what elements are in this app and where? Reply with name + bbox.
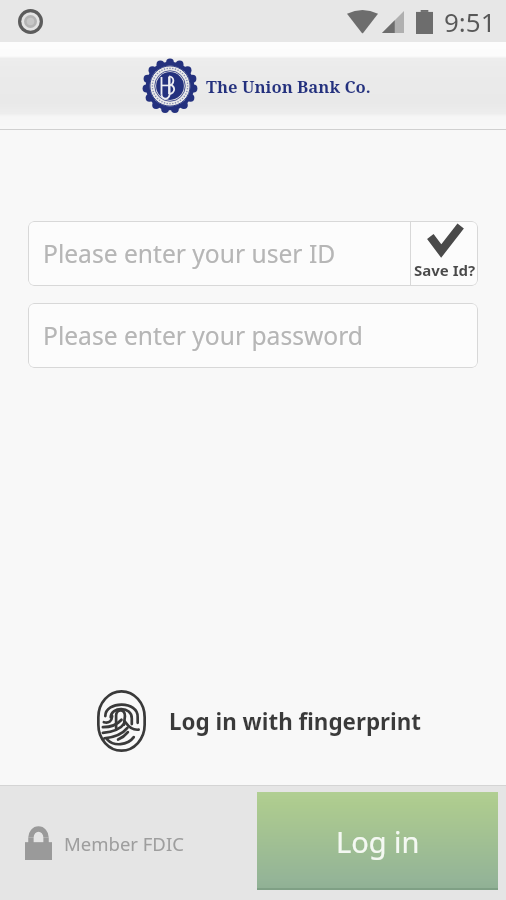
staticText: Please enter your password	[43, 319, 363, 353]
staticText: Log in	[336, 822, 420, 861]
staticText: Log in with fingerprint	[169, 706, 422, 737]
button[interactable]: Member FDIC	[25, 827, 184, 860]
button[interactable]: Save Id	[411, 221, 478, 286]
staticText: Save Id?	[414, 260, 476, 280]
staticText: Member FDIC	[64, 831, 184, 856]
staticText: The Union Bank Co.	[206, 75, 371, 98]
button[interactable]: Notifications	[16, 7, 44, 35]
button[interactable]: Log in	[257, 792, 498, 890]
staticText: Please enter your user ID	[43, 237, 336, 271]
button[interactable]: Please enter your user ID	[28, 221, 410, 286]
staticText: 9:51	[444, 4, 496, 39]
button[interactable]: Please enter your password	[28, 303, 478, 368]
button[interactable]: Log in with fingerprint	[13, 690, 506, 752]
